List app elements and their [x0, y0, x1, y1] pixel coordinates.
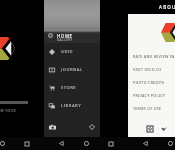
button[interactable]: VISIT VSCO.CO: [128, 63, 175, 76]
button[interactable]: Back: [139, 137, 152, 150]
button[interactable]: Home: [80, 137, 93, 150]
button[interactable]: Camera: [49, 124, 56, 131]
button[interactable]: Back: [55, 137, 68, 150]
button[interactable]: Twitter: [161, 126, 167, 132]
button[interactable]: Recents: [104, 137, 117, 150]
button[interactable]: Instagram: [147, 126, 153, 132]
button[interactable]: Home: [164, 137, 175, 150]
button[interactable]: JOURNAL: [44, 61, 100, 79]
staticText: IMPORT FROM YOUR DEVICE: [0, 108, 28, 112]
button[interactable]: PRIVACY POLICY: [128, 89, 175, 102]
button[interactable]: Recents: [20, 137, 33, 150]
staticText: VISIT VSCO.CO: [133, 67, 162, 72]
button[interactable]: RATE AND REVIEW IN GOOGLE PLAY: [128, 50, 175, 63]
staticText: TERMS OF USE: [133, 106, 162, 111]
button[interactable]: Settings: [89, 124, 95, 130]
staticText: ABOUT: [159, 4, 175, 10]
button[interactable]: LIBRARY: [44, 97, 100, 115]
staticText: HOME: [57, 33, 73, 39]
staticText: RATE AND REVIEW IN GOOGLE PLAY: [133, 54, 175, 59]
staticText: LIBRARY: [61, 103, 82, 109]
staticText: PHOTO CREDITS: [133, 80, 165, 85]
staticText: GALLERY: [57, 38, 73, 42]
button[interactable]: TERMS OF USE: [128, 102, 175, 115]
staticText: STORE: [61, 85, 77, 91]
staticText: GRID: [61, 49, 74, 55]
staticText: PRIVACY POLICY: [133, 93, 166, 98]
button[interactable]: GRID: [44, 43, 100, 61]
staticText: JOURNAL: [61, 67, 83, 73]
button[interactable]: Home: [0, 137, 9, 150]
button[interactable]: PHOTO CREDITS: [128, 76, 175, 89]
button[interactable]: STORE: [44, 79, 100, 97]
